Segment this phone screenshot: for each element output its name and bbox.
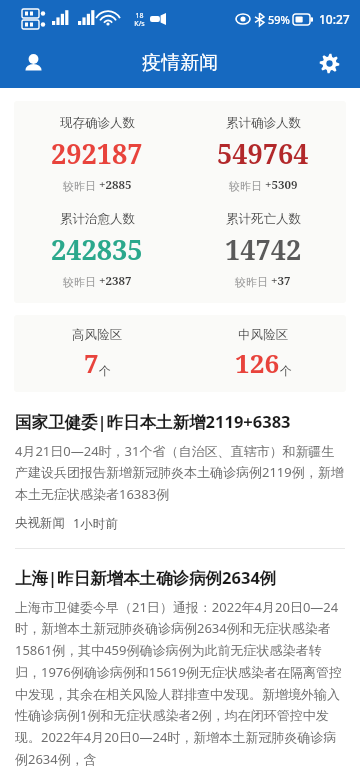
button[interactable]: 现存确诊人数 (14, 101, 346, 303)
staticText: 7 (84, 345, 99, 380)
staticText: 累计确诊人数 (226, 115, 301, 131)
staticText: 央视新闻 (15, 515, 65, 531)
button[interactable]: Settings (310, 44, 348, 82)
staticText: 549764 (217, 135, 309, 172)
staticText: 累计治愈人数 (60, 211, 135, 227)
staticText: 18 K/s (134, 11, 145, 28)
staticText: 126 (235, 345, 280, 380)
staticText: +37 (271, 273, 291, 289)
staticText: 高风险区 (72, 327, 122, 343)
staticText: 国家卫健委|昨日本土新增2119+6383 (15, 410, 291, 433)
staticText: 疫情新闻 (142, 51, 218, 75)
staticText: 现存确诊人数 (60, 115, 135, 131)
staticText: 个 (280, 363, 292, 378)
button[interactable]: Profile (14, 44, 52, 82)
staticText: +5309 (265, 177, 298, 193)
staticText: 1小时前 (73, 515, 118, 532)
staticText: +2387 (99, 273, 132, 289)
staticText: 292187 (51, 135, 143, 172)
staticText: 4月21日0—24时，31个省（自治区、直辖市）和新疆生产建设兵团报告新增新冠肺… (15, 442, 345, 503)
staticText: 中风险区 (238, 327, 288, 343)
staticText: 累计死亡人数 (226, 211, 301, 227)
staticText: 10:27 (319, 11, 350, 27)
button[interactable]: 高风险区 (14, 315, 346, 392)
staticText: 上海市卫健委今早（21日）通报：2022年4月20日0—24时，新增本土新冠肺炎… (15, 598, 345, 768)
staticText: 较昨日 (235, 274, 271, 289)
staticText: 242835 (51, 231, 143, 268)
button[interactable]: 国家卫健委|昨日本土新增2119+6383 (0, 410, 360, 548)
staticText: 较昨日 (63, 274, 99, 289)
staticText: 个 (99, 363, 111, 378)
button[interactable]: 上海|昨日新增本土确诊病例2634例 (0, 548, 360, 782)
staticText: 59% (268, 12, 290, 27)
staticText: +2885 (99, 177, 132, 193)
staticText: 较昨日 (229, 178, 265, 193)
staticText: 较昨日 (63, 178, 99, 193)
staticText: 上海|昨日新增本土确诊病例2634例 (15, 566, 277, 589)
staticText: 14742 (225, 231, 302, 268)
